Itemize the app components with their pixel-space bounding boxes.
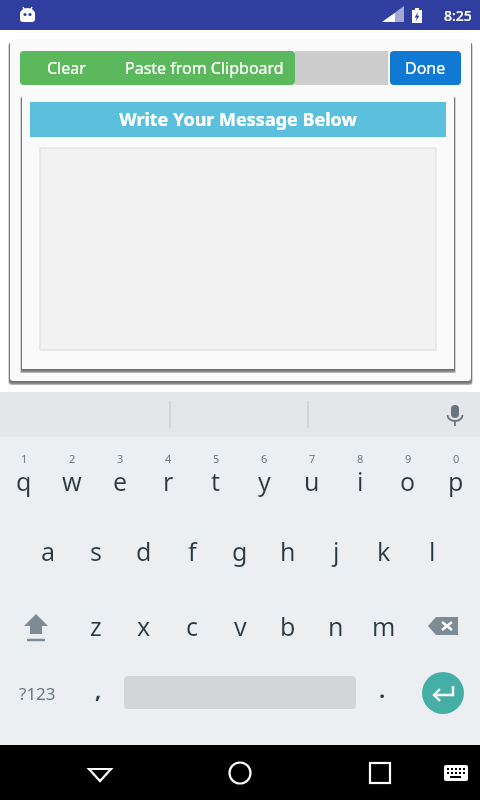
staticText: d [136, 534, 152, 568]
button[interactable]: Shift [0, 588, 72, 663]
staticText: w [62, 464, 82, 498]
button[interactable]: g [216, 513, 264, 588]
staticText: m [372, 609, 396, 643]
staticText: n [328, 609, 344, 643]
button[interactable]: n [312, 588, 360, 663]
staticText: 7 [309, 451, 316, 466]
staticText: t [211, 464, 221, 498]
staticText: Write Your Message Below [119, 107, 357, 132]
button[interactable]: 5 [192, 437, 240, 513]
staticText: 5 [213, 451, 220, 466]
button[interactable]: z [72, 588, 120, 663]
staticText: j [333, 534, 340, 568]
staticText: , [95, 674, 102, 704]
staticText: g [232, 534, 248, 568]
button[interactable]: 0 [432, 437, 480, 513]
staticText: b [280, 609, 296, 643]
staticText: y [258, 464, 271, 498]
staticText: 2 [69, 451, 76, 466]
button[interactable]: d [120, 513, 168, 588]
staticText: . [379, 674, 386, 704]
button[interactable]: b [264, 588, 312, 663]
button[interactable]: Voice input [430, 392, 480, 437]
staticText: k [377, 534, 391, 568]
button[interactable]: Enter [410, 663, 476, 723]
button[interactable]: c [168, 588, 216, 663]
staticText: f [188, 534, 197, 568]
button[interactable]: 2 [48, 437, 96, 513]
button[interactable]: Done [390, 51, 461, 85]
staticText: 9 [405, 451, 412, 466]
staticText: p [448, 464, 464, 498]
button[interactable]: Backspace [408, 588, 480, 663]
staticText: 8 [357, 451, 364, 466]
staticText: ?123 [19, 682, 56, 705]
button[interactable]: a [24, 513, 72, 588]
staticText: r [163, 464, 174, 498]
staticText: 8:25 [444, 6, 472, 25]
button[interactable]: s [72, 513, 120, 588]
button[interactable]: Write Your Message Below [30, 102, 446, 137]
staticText: h [280, 534, 296, 568]
button[interactable]: Recents [350, 745, 410, 800]
staticText: c [186, 609, 199, 643]
button[interactable]: f [168, 513, 216, 588]
button[interactable]: 1 [0, 437, 48, 513]
button[interactable]: x [120, 588, 168, 663]
staticText: 1 [21, 451, 28, 466]
button[interactable]: , [78, 663, 118, 723]
button[interactable]: k [360, 513, 408, 588]
staticText: a [41, 534, 56, 568]
button[interactable]: v [216, 588, 264, 663]
button[interactable]: ?123 [0, 663, 74, 723]
staticText: 3 [117, 451, 124, 466]
staticText: Paste from Clipboard [125, 57, 284, 79]
staticText: 0 [453, 451, 460, 466]
button[interactable]: h [264, 513, 312, 588]
staticText: 4 [165, 451, 172, 466]
staticText: x [137, 609, 151, 643]
button[interactable]: 9 [384, 437, 432, 513]
staticText: u [304, 464, 320, 498]
staticText: i [357, 464, 364, 498]
button[interactable]: j [312, 513, 360, 588]
button[interactable]: Back [70, 745, 130, 800]
button[interactable]: 6 [240, 437, 288, 513]
staticText: 6 [261, 451, 268, 466]
button[interactable]: 4 [144, 437, 192, 513]
staticText: v [234, 609, 247, 643]
button[interactable]: m [360, 588, 408, 663]
button[interactable]: Clear [20, 51, 113, 85]
staticText: s [90, 534, 102, 568]
staticText: Done [405, 57, 446, 79]
button[interactable]: l [408, 513, 456, 588]
staticText: z [90, 609, 102, 643]
button[interactable]: 7 [288, 437, 336, 513]
staticText: q [16, 464, 32, 498]
button[interactable]: 8 [336, 437, 384, 513]
staticText: Clear [47, 57, 86, 79]
staticText: o [400, 464, 416, 498]
button[interactable]: 3 [96, 437, 144, 513]
button[interactable]: Paste from Clipboard [113, 51, 295, 85]
button[interactable]: Switch keyboard [432, 745, 480, 800]
staticText: l [429, 534, 436, 568]
button[interactable]: . [362, 663, 402, 723]
staticText: e [113, 464, 128, 498]
button[interactable]: Home [210, 745, 270, 800]
